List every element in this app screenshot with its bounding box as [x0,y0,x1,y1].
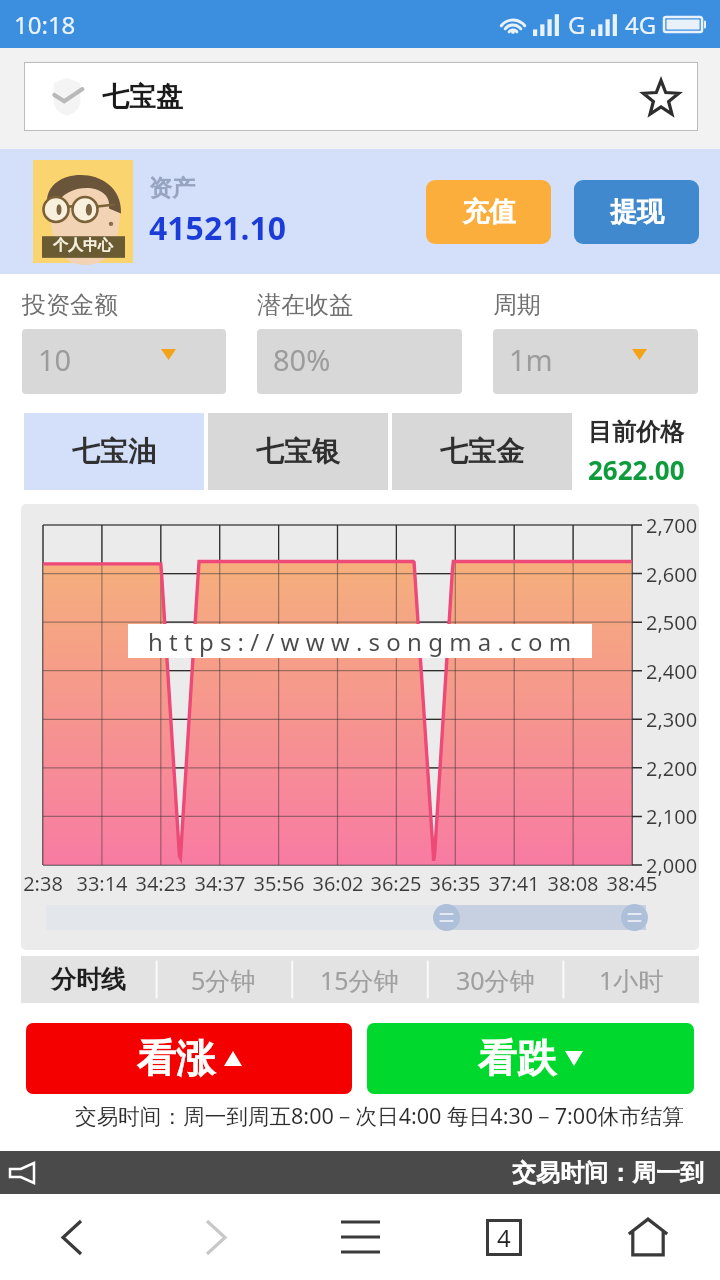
staticText: 2,700 [646,512,698,539]
button[interactable]: 分时线 [21,956,156,1003]
staticText: 2,000 [646,852,698,879]
staticText: 36:02 [312,870,364,897]
staticText: 4 [497,1221,511,1254]
staticText: 80% [273,340,331,379]
button[interactable]: 七宝盘 [24,62,698,131]
staticText: 2,100 [646,803,698,830]
staticText: 34:37 [194,870,246,897]
staticText: 交易时间：周一到 [512,1158,704,1188]
staticText: 41521.10 [149,206,287,250]
button[interactable]: 15分钟 [291,956,427,1003]
staticText: 目前价格 [588,417,684,447]
staticText: 七宝银 [256,434,340,469]
button[interactable]: Chart range [46,905,646,930]
staticText: 4G [625,8,657,41]
staticText: 2,200 [646,755,698,782]
button[interactable]: Back [0,1194,144,1280]
staticText: 交易时间：周一到周五8:00－次日4:00 每日4:30－7:00休市结算 [75,1101,684,1131]
staticText: 2,400 [646,658,698,685]
staticText: 1m [509,340,553,379]
staticText: 周期 [493,290,541,320]
staticText: 35:56 [253,870,305,897]
staticText: 5分钟 [191,963,256,997]
staticText: 30分钟 [456,963,535,997]
staticText: 1小时 [599,963,664,997]
staticText: 潜在收益 [257,290,353,320]
button[interactable]: 5分钟 [156,956,291,1003]
button[interactable]: Tabs [432,1194,576,1280]
staticText: 提现 [610,195,664,229]
button[interactable]: Favourite [634,70,688,124]
staticText: 2:38 [23,870,63,897]
staticText: 37:41 [488,870,540,897]
staticText: 36:35 [429,870,481,897]
staticText: h t t p s : / / w w w . s o n g m a . c … [148,625,572,658]
staticText: 2,500 [646,609,698,636]
staticText: 38:08 [547,870,599,897]
button[interactable]: 1m [493,329,698,394]
staticText: 七宝盘 [102,80,183,114]
staticText: 38:45 [606,870,658,897]
staticText: 2,300 [646,706,698,733]
button[interactable]: 看跌 [367,1023,694,1094]
button[interactable]: 七宝金 [392,413,572,490]
button[interactable]: 看涨 [26,1023,352,1094]
staticText: 2,600 [646,561,698,588]
staticText: 36:25 [370,870,422,897]
button[interactable]: 80% [257,329,462,394]
button[interactable]: 七宝银 [208,413,388,490]
staticText: 看跌 [478,1034,556,1083]
staticText: 七宝油 [72,434,156,469]
button[interactable]: Profile [33,160,133,263]
button[interactable]: 充值 [426,180,551,244]
button[interactable]: 30分钟 [427,956,563,1003]
staticText: 七宝金 [440,434,524,469]
staticText: 33:14 [76,870,128,897]
staticText: 充值 [462,195,516,229]
button[interactable]: 1小时 [563,956,699,1003]
button[interactable]: Menu [288,1194,432,1280]
staticText: 个人中心 [53,236,113,255]
staticText: 10 [38,340,72,379]
staticText: 15分钟 [320,963,399,997]
staticText: 看涨 [137,1034,215,1083]
button[interactable]: Forward [144,1194,288,1280]
button[interactable]: 提现 [574,180,699,244]
staticText: 34:23 [135,870,187,897]
button[interactable]: 七宝油 [24,413,204,490]
button[interactable]: 10 [22,329,226,394]
staticText: 投资金额 [22,290,118,320]
staticText: 10:18 [14,8,76,41]
staticText: 2622.00 [588,452,685,487]
staticText: G [568,8,586,41]
staticText: 分时线 [51,964,126,995]
button[interactable]: Home [576,1194,720,1280]
staticText: 资产 [149,174,195,203]
